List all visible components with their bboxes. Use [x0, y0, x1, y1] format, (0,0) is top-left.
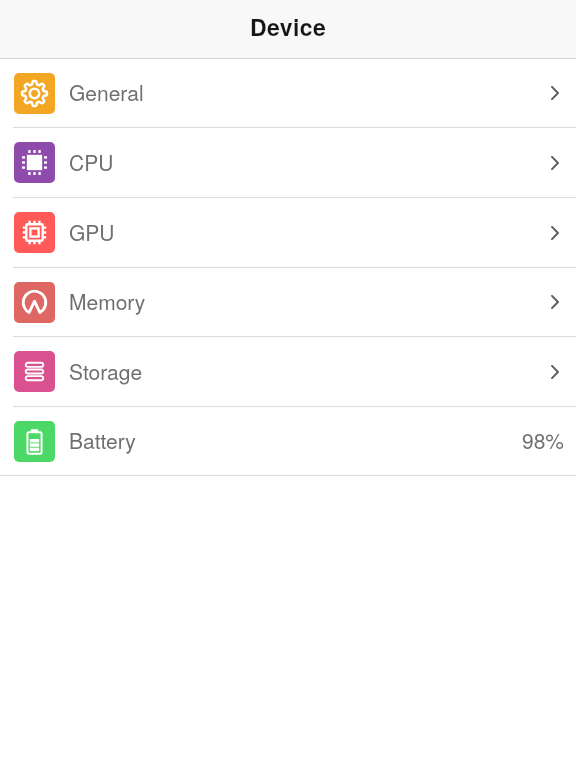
staticText: Battery	[69, 425, 136, 455]
staticText: GPU	[69, 217, 115, 247]
staticText: Storage	[69, 356, 143, 386]
staticText: 98%	[522, 425, 565, 455]
staticText: General	[69, 77, 144, 107]
other: Open General	[542, 80, 568, 106]
button[interactable]: GPU	[0, 198, 576, 268]
button[interactable]: Storage	[0, 337, 576, 407]
staticText: CPU	[69, 147, 114, 177]
button[interactable]: General	[0, 59, 576, 128]
other: Open Storage	[542, 359, 568, 385]
button[interactable]: Memory	[0, 268, 576, 337]
other: Open GPU	[542, 220, 568, 246]
button[interactable]: CPU	[0, 128, 576, 198]
other: Open CPU	[542, 150, 568, 176]
staticText: Memory	[69, 286, 146, 316]
other: Open Memory	[542, 289, 568, 315]
button[interactable]: Battery	[0, 407, 576, 476]
staticText: Device	[250, 10, 327, 43]
